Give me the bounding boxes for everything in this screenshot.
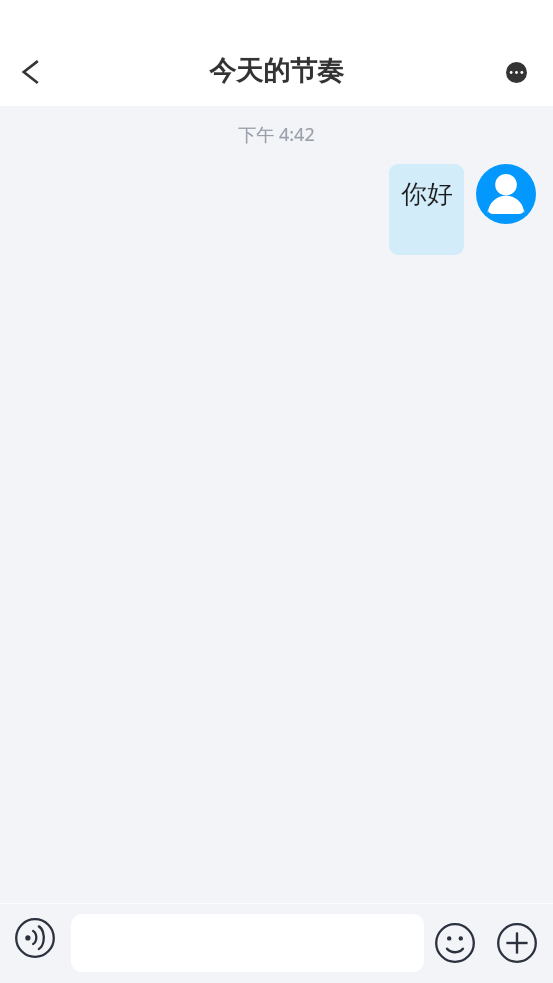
button[interactable]: Emoji [429, 917, 481, 969]
button[interactable]: 你好 [389, 164, 464, 255]
button[interactable]: More options [492, 48, 540, 96]
button[interactable]: Add [491, 917, 543, 969]
staticText: 今天的节奏 [209, 54, 344, 88]
button[interactable]: Voice message [9, 912, 61, 964]
staticText: 下午 4:42 [0, 122, 553, 147]
button[interactable]: Avatar [476, 164, 536, 224]
button[interactable]: Back [6, 48, 54, 96]
staticText: 你好 [401, 178, 453, 211]
